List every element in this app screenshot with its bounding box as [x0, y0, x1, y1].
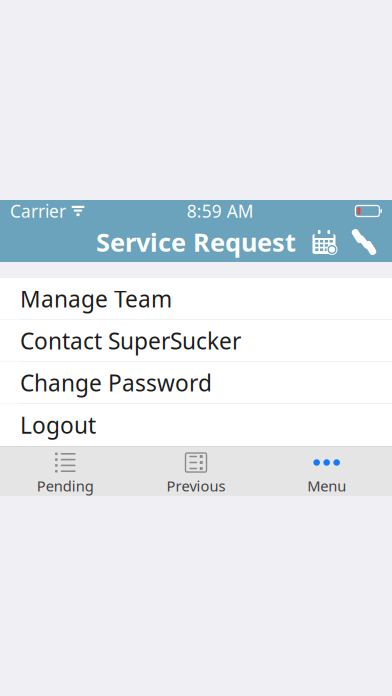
button[interactable]: Menu	[261, 446, 392, 496]
staticText: Manage Team	[20, 284, 172, 314]
button[interactable]: Manage Team	[0, 278, 392, 320]
staticText: Logout	[20, 410, 96, 440]
staticText: Previous	[166, 476, 225, 495]
button[interactable]: Call	[344, 222, 384, 262]
button[interactable]: Previous	[131, 446, 261, 496]
button[interactable]: Change Password	[0, 362, 392, 404]
staticText: Change Password	[20, 368, 212, 398]
staticText: Menu	[307, 476, 346, 495]
staticText: 8:59 AM	[187, 199, 254, 222]
staticText: Service Request	[96, 225, 296, 259]
staticText: Carrier	[10, 199, 66, 222]
staticText: Pending	[37, 476, 94, 495]
button[interactable]: Schedule	[304, 222, 344, 262]
staticText: Contact SuperSucker	[20, 326, 241, 356]
button[interactable]: Contact SuperSucker	[0, 320, 392, 362]
button[interactable]: Logout	[0, 404, 392, 446]
button[interactable]: Pending	[0, 446, 131, 496]
